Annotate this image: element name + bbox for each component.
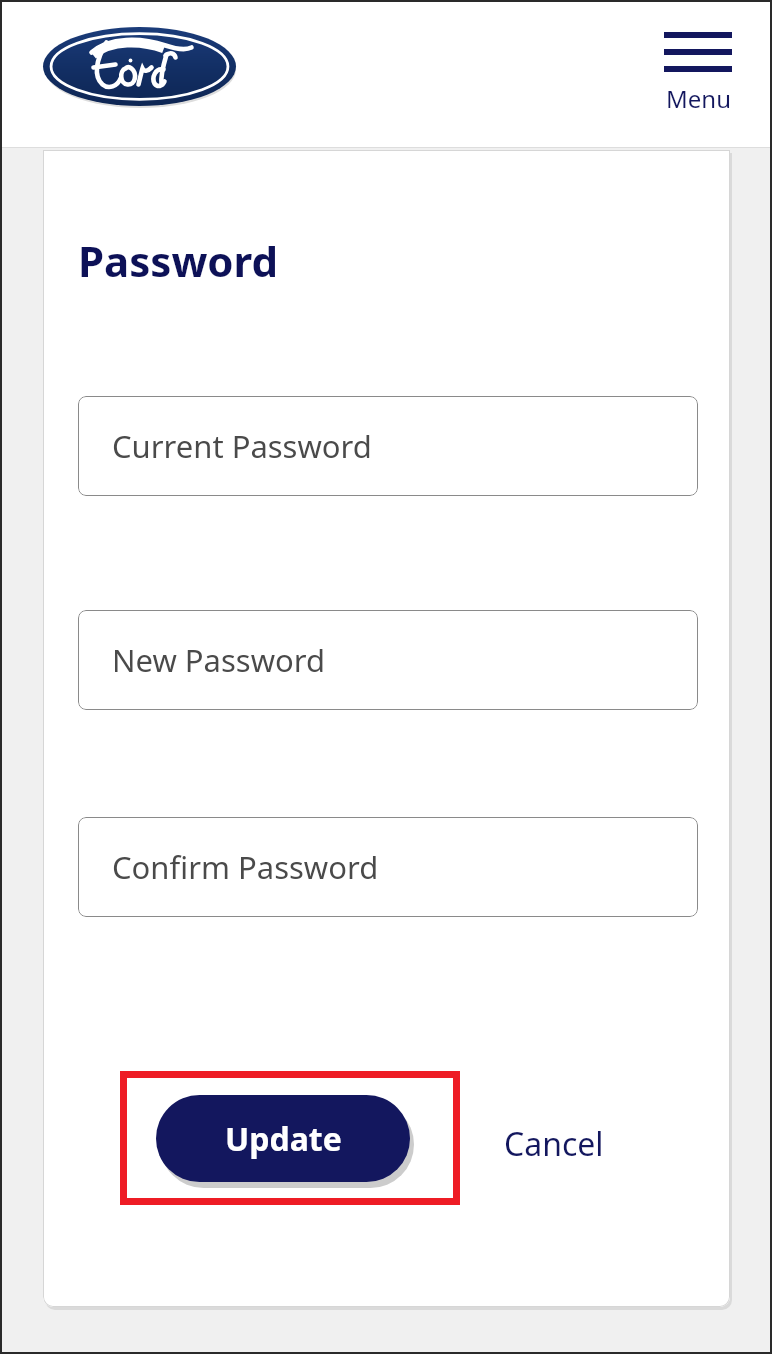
staticText: Password bbox=[78, 232, 279, 289]
button[interactable]: Confirm Password bbox=[78, 817, 698, 917]
button[interactable]: Menu bbox=[655, 24, 741, 119]
staticText: Confirm Password bbox=[112, 846, 379, 888]
staticText: Menu bbox=[666, 82, 731, 115]
button[interactable]: Ford home bbox=[43, 27, 236, 106]
staticText: Current Password bbox=[112, 425, 372, 467]
staticText: Update bbox=[225, 1117, 342, 1161]
button[interactable]: Update bbox=[156, 1095, 410, 1182]
button[interactable]: New Password bbox=[78, 610, 698, 710]
staticText: New Password bbox=[112, 639, 326, 681]
button[interactable]: Cancel bbox=[490, 1108, 618, 1180]
staticText: Cancel bbox=[504, 1122, 604, 1166]
button[interactable]: Current Password bbox=[78, 396, 698, 496]
